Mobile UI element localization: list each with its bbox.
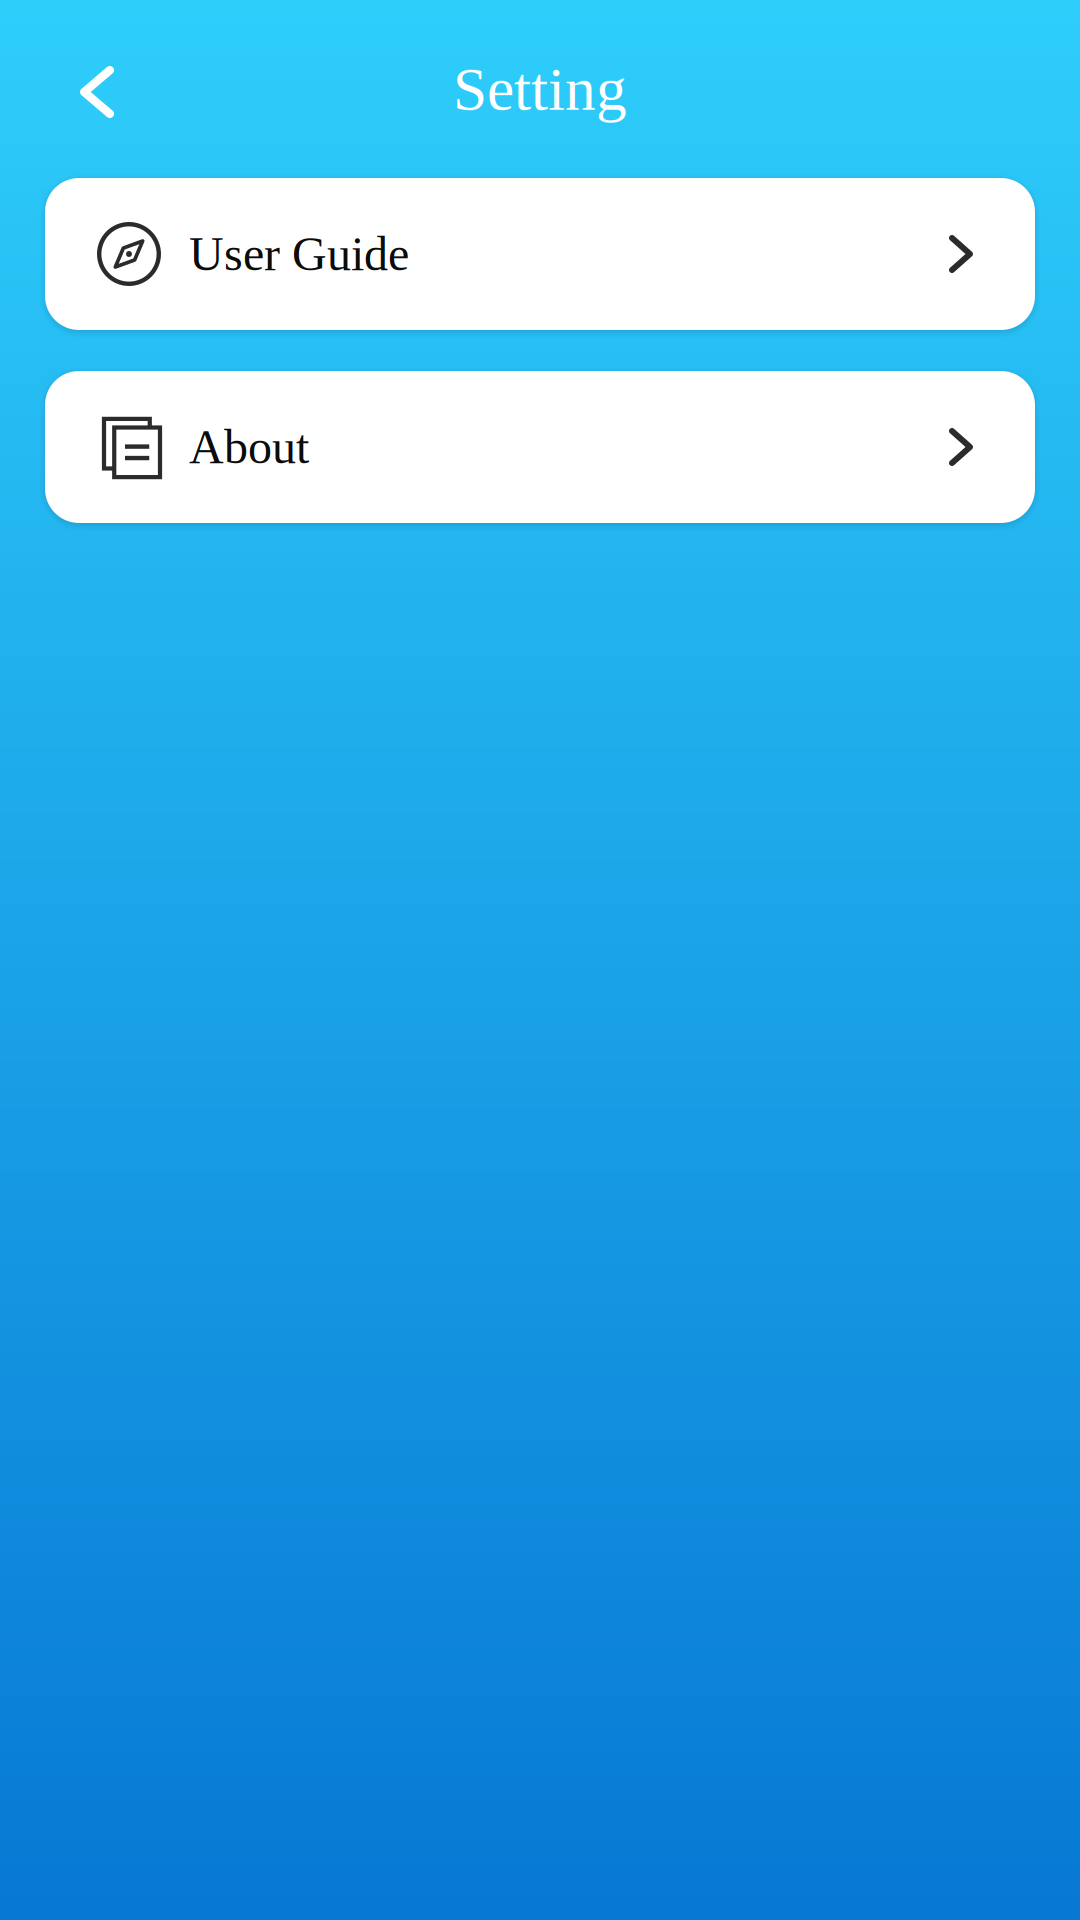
button[interactable]: Back bbox=[56, 42, 140, 136]
staticText: About bbox=[189, 420, 309, 474]
button[interactable]: About bbox=[45, 371, 1035, 523]
staticText: Setting bbox=[453, 55, 627, 123]
staticText: User Guide bbox=[189, 227, 409, 281]
button[interactable]: User Guide bbox=[45, 178, 1035, 330]
